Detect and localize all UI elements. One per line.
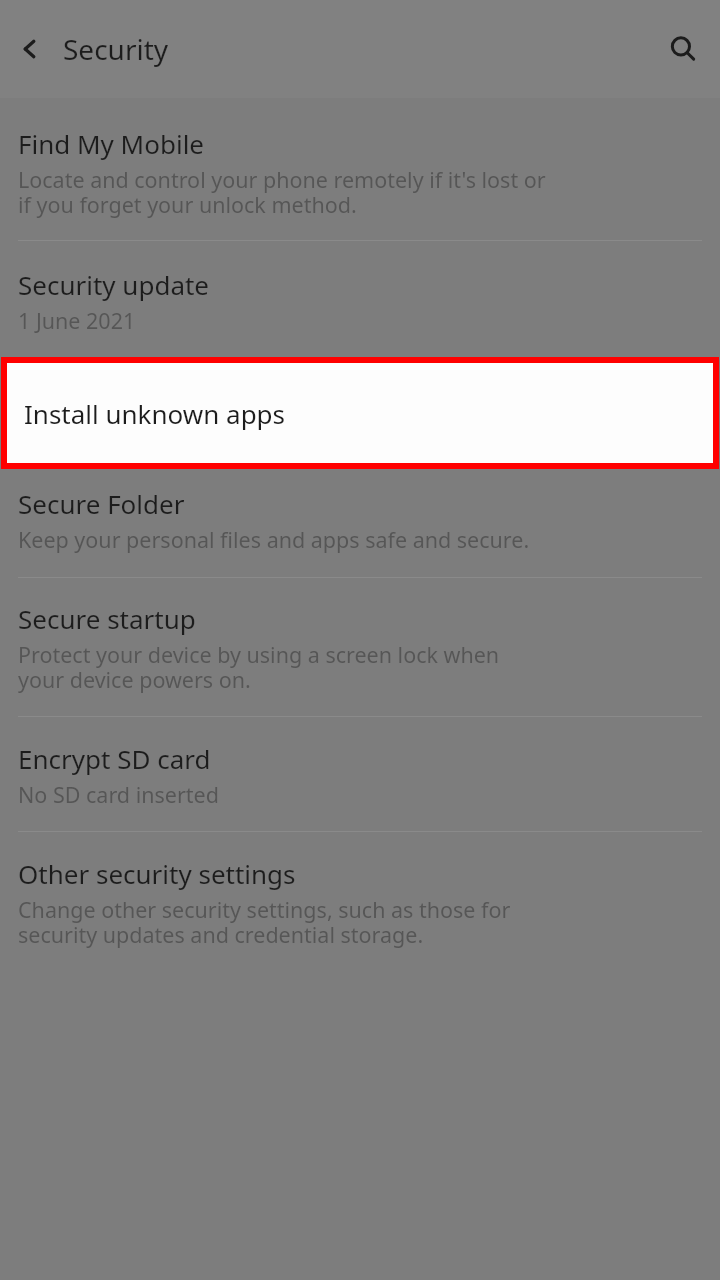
staticText: Secure Folder xyxy=(18,486,185,521)
staticText: Security update xyxy=(18,267,210,302)
staticText: Change other security settings, such as … xyxy=(18,895,511,949)
button[interactable]: Secure Folder xyxy=(0,469,720,577)
staticText: No SD card inserted xyxy=(18,780,219,809)
staticText: 1 June 2021 xyxy=(18,306,136,335)
staticText: Encrypt SD card xyxy=(18,741,211,776)
button[interactable]: Find My Mobile xyxy=(0,98,720,240)
button[interactable]: Navigate up xyxy=(9,28,51,70)
staticText: Security xyxy=(63,30,169,68)
button[interactable]: Encrypt SD card xyxy=(0,717,720,831)
staticText: Locate and control your phone remotely i… xyxy=(18,165,546,219)
button[interactable]: Secure startup xyxy=(0,578,720,716)
button[interactable]: Install unknown apps xyxy=(7,363,713,463)
button[interactable]: Other security settings xyxy=(0,832,720,971)
staticText: Keep your personal files and apps safe a… xyxy=(18,525,530,554)
staticText: Secure startup xyxy=(18,601,196,636)
staticText: Other security settings xyxy=(18,856,296,891)
staticText: Install unknown apps xyxy=(24,396,286,431)
button[interactable]: Security update xyxy=(0,241,720,357)
staticText: Protect your device by using a screen lo… xyxy=(18,640,500,694)
button[interactable]: Search xyxy=(660,26,706,72)
staticText: Find My Mobile xyxy=(18,126,205,161)
